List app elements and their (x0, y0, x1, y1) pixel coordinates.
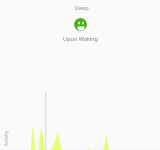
staticText: Activity (3, 130, 9, 146)
button[interactable]: Mood: happy (74, 18, 87, 31)
staticText: Upon Waking (63, 35, 98, 42)
staticText: Sleep (74, 4, 89, 11)
